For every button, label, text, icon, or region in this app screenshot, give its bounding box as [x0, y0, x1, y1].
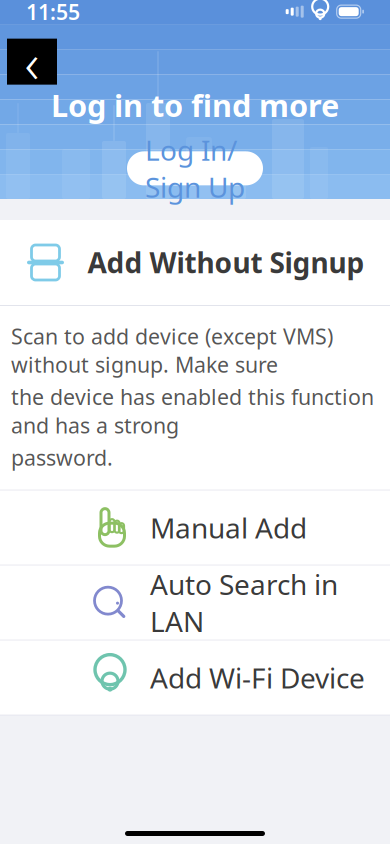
staticText: the device has enabled this function and…	[11, 383, 374, 439]
button[interactable]: Back	[7, 39, 57, 85]
staticText: Log In/Sign Up	[145, 131, 245, 206]
button[interactable]: Log In/Sign Up	[127, 151, 263, 185]
staticText: Add Without Signup	[87, 244, 364, 281]
button[interactable]: Add Wi-Fi Device	[0, 641, 390, 715]
staticText: Log in to find more	[51, 85, 339, 125]
staticText: Manual Add	[150, 509, 307, 546]
staticText: Auto Search in LAN	[150, 565, 338, 640]
button[interactable]: Manual Add	[0, 491, 390, 565]
button[interactable]: Auto Search in LAN	[0, 566, 390, 640]
staticText: password.	[11, 443, 113, 472]
button[interactable]: Add Without Signup	[0, 220, 390, 305]
staticText: Add Wi-Fi Device	[150, 659, 365, 696]
staticText: Scan to add device (except VMS) without …	[11, 322, 333, 379]
staticText: 11:55	[26, 0, 80, 26]
staticText: ‹	[24, 24, 39, 99]
